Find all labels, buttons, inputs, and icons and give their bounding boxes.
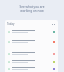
- button[interactable]: [5, 39, 58, 44]
- button[interactable]: Today: [5, 21, 58, 27]
- staticText: See what you are: [0, 5, 64, 9]
- button[interactable]: [5, 29, 58, 34]
- button[interactable]: [5, 51, 58, 56]
- staticText: working on now: [0, 9, 64, 13]
- button[interactable]: [5, 66, 58, 71]
- button[interactable]: [5, 59, 58, 64]
- staticText: Today: [7, 22, 15, 26]
